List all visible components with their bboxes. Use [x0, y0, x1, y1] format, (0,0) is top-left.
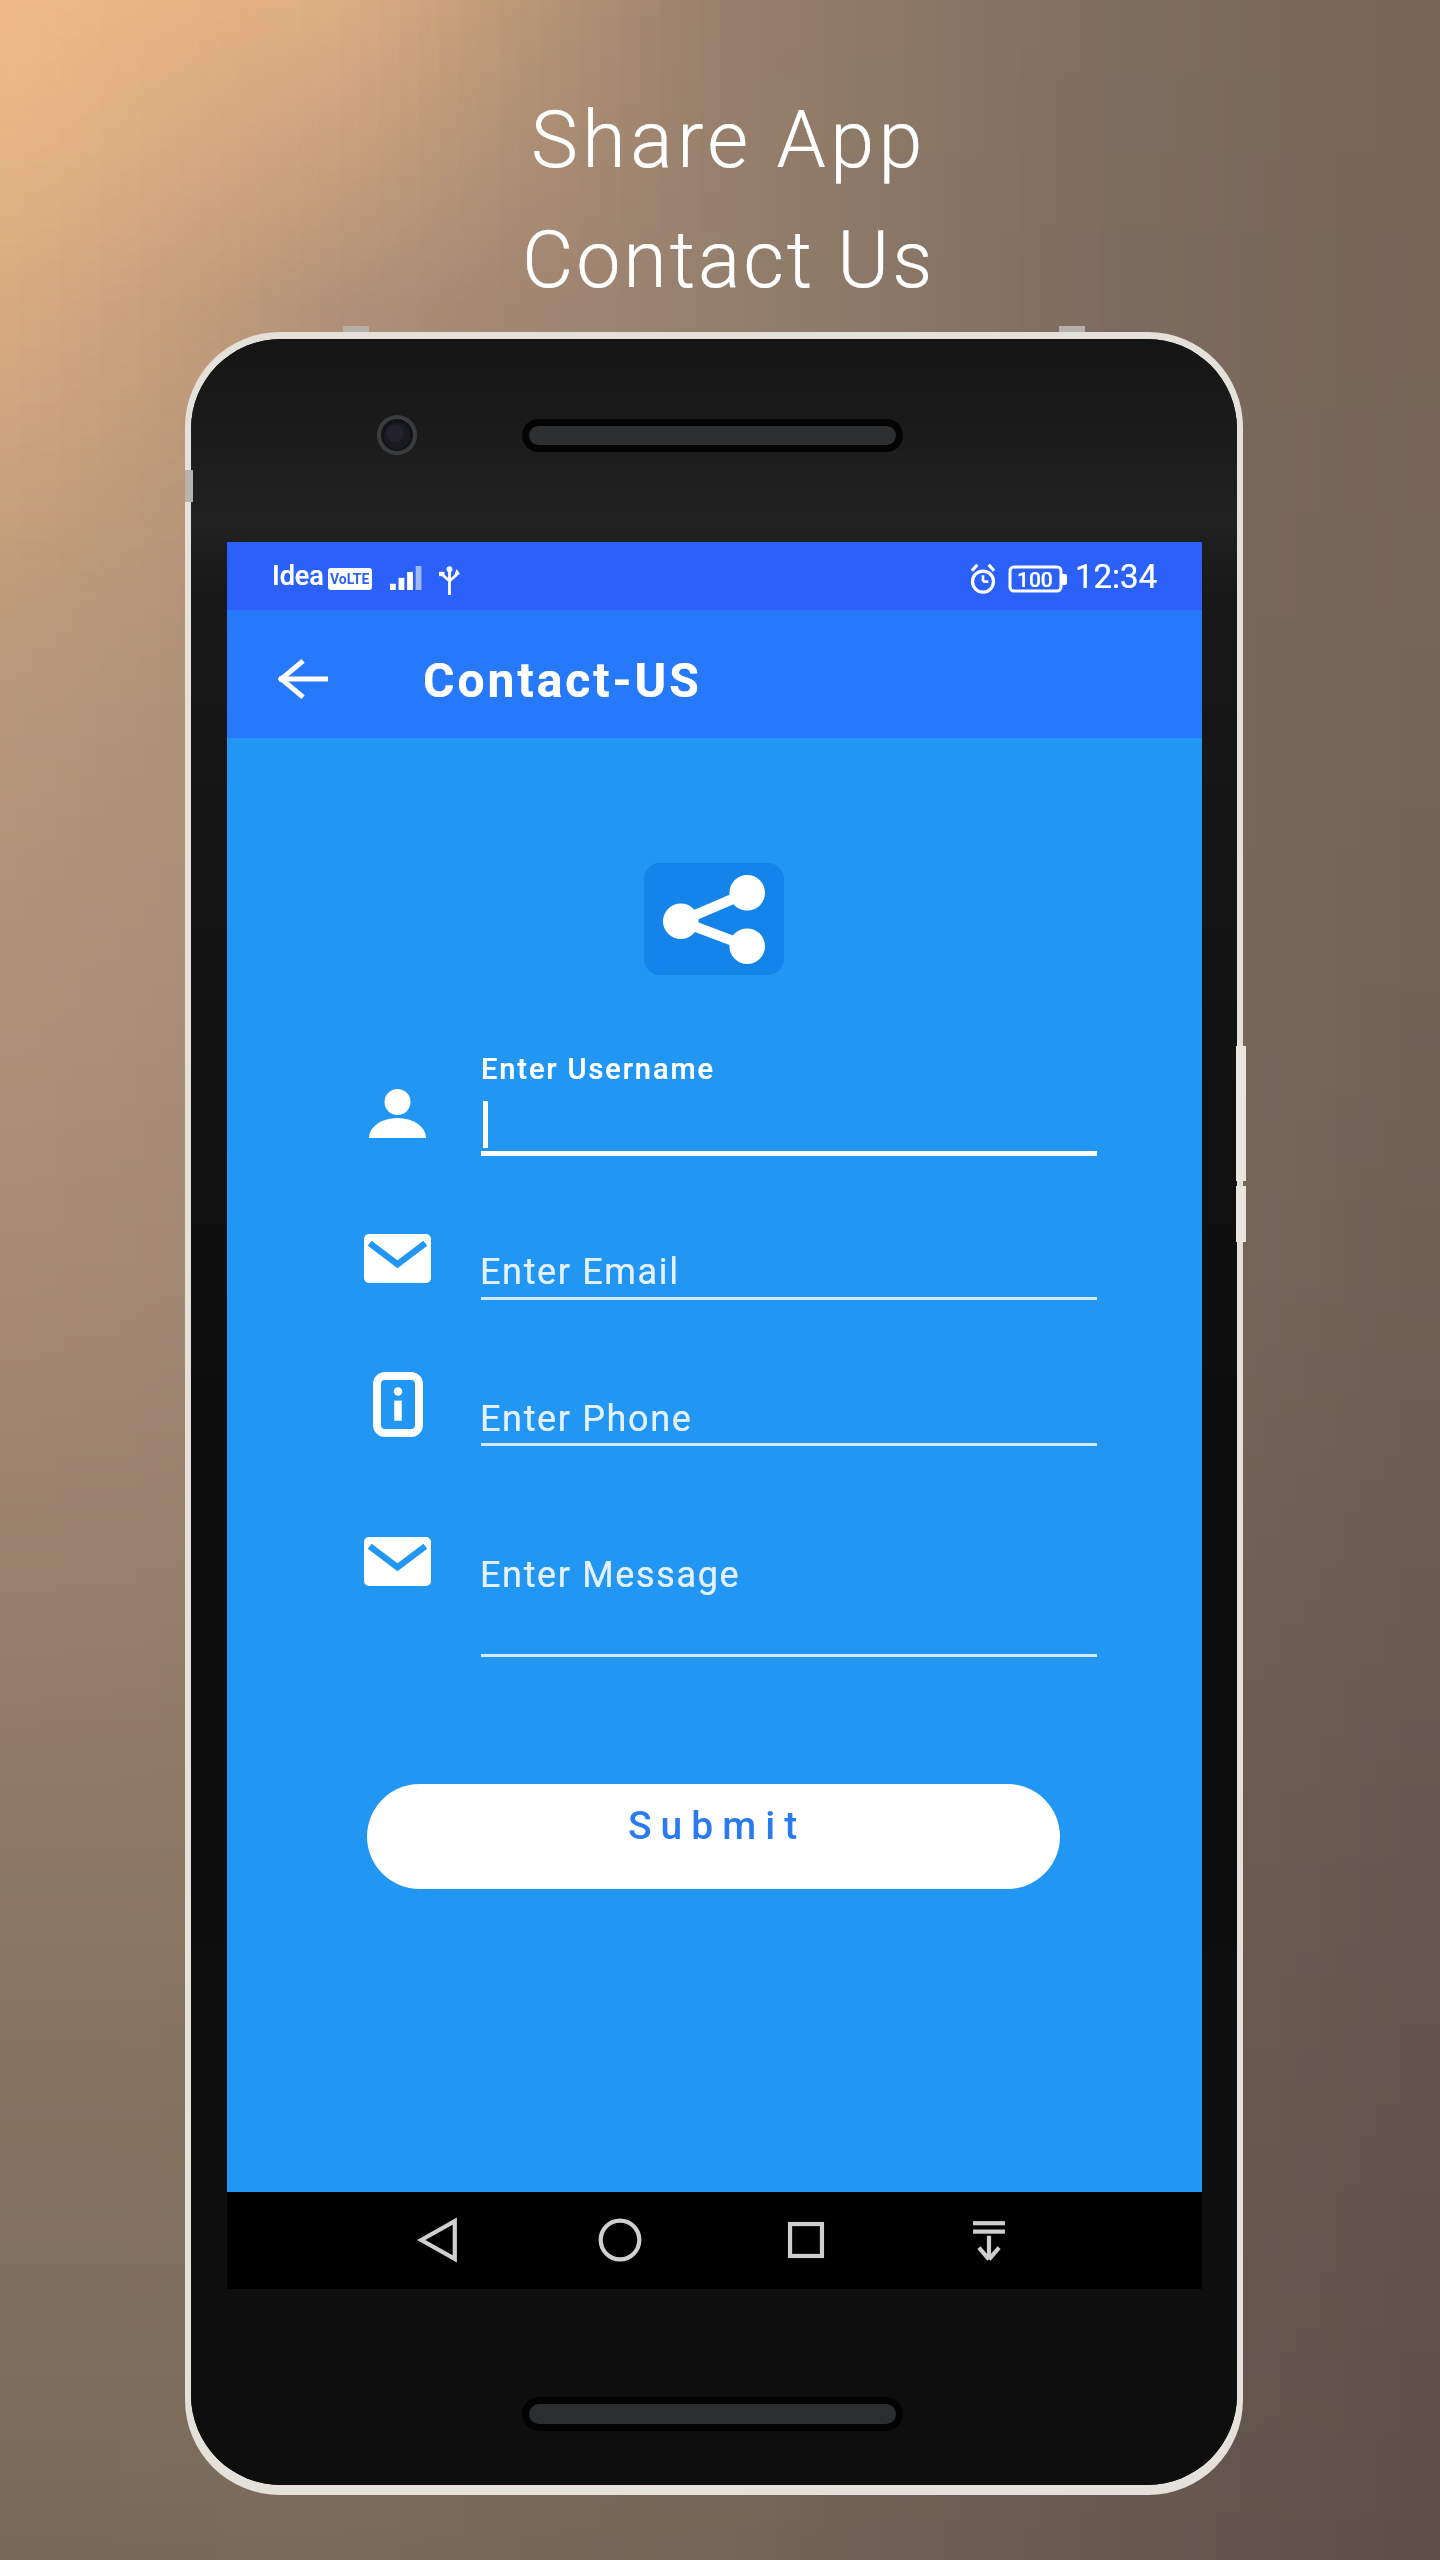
staticText: VoLTE	[330, 571, 370, 587]
button[interactable]: Home	[584, 2204, 656, 2276]
staticText: Idea	[272, 560, 324, 592]
staticText: 100	[1017, 568, 1053, 592]
staticText: 12:34	[1075, 557, 1158, 596]
staticText: Enter Username	[481, 1052, 716, 1086]
staticText: Submit	[628, 1803, 807, 1849]
staticText: Contact Us	[522, 214, 936, 307]
staticText: Enter Message	[480, 1554, 741, 1596]
button[interactable]: Submit	[367, 1784, 1060, 1889]
button[interactable]: Hide keyboard	[953, 2204, 1025, 2276]
staticText: Enter Email	[480, 1251, 680, 1293]
staticText: Enter Phone	[480, 1398, 693, 1440]
button[interactable]: Back	[272, 648, 334, 710]
staticText: Share App	[531, 94, 927, 187]
staticText: Contact-US	[423, 652, 702, 708]
button[interactable]: Recents	[770, 2204, 842, 2276]
button[interactable]: Back	[402, 2204, 474, 2276]
button[interactable]: Share	[644, 863, 784, 975]
